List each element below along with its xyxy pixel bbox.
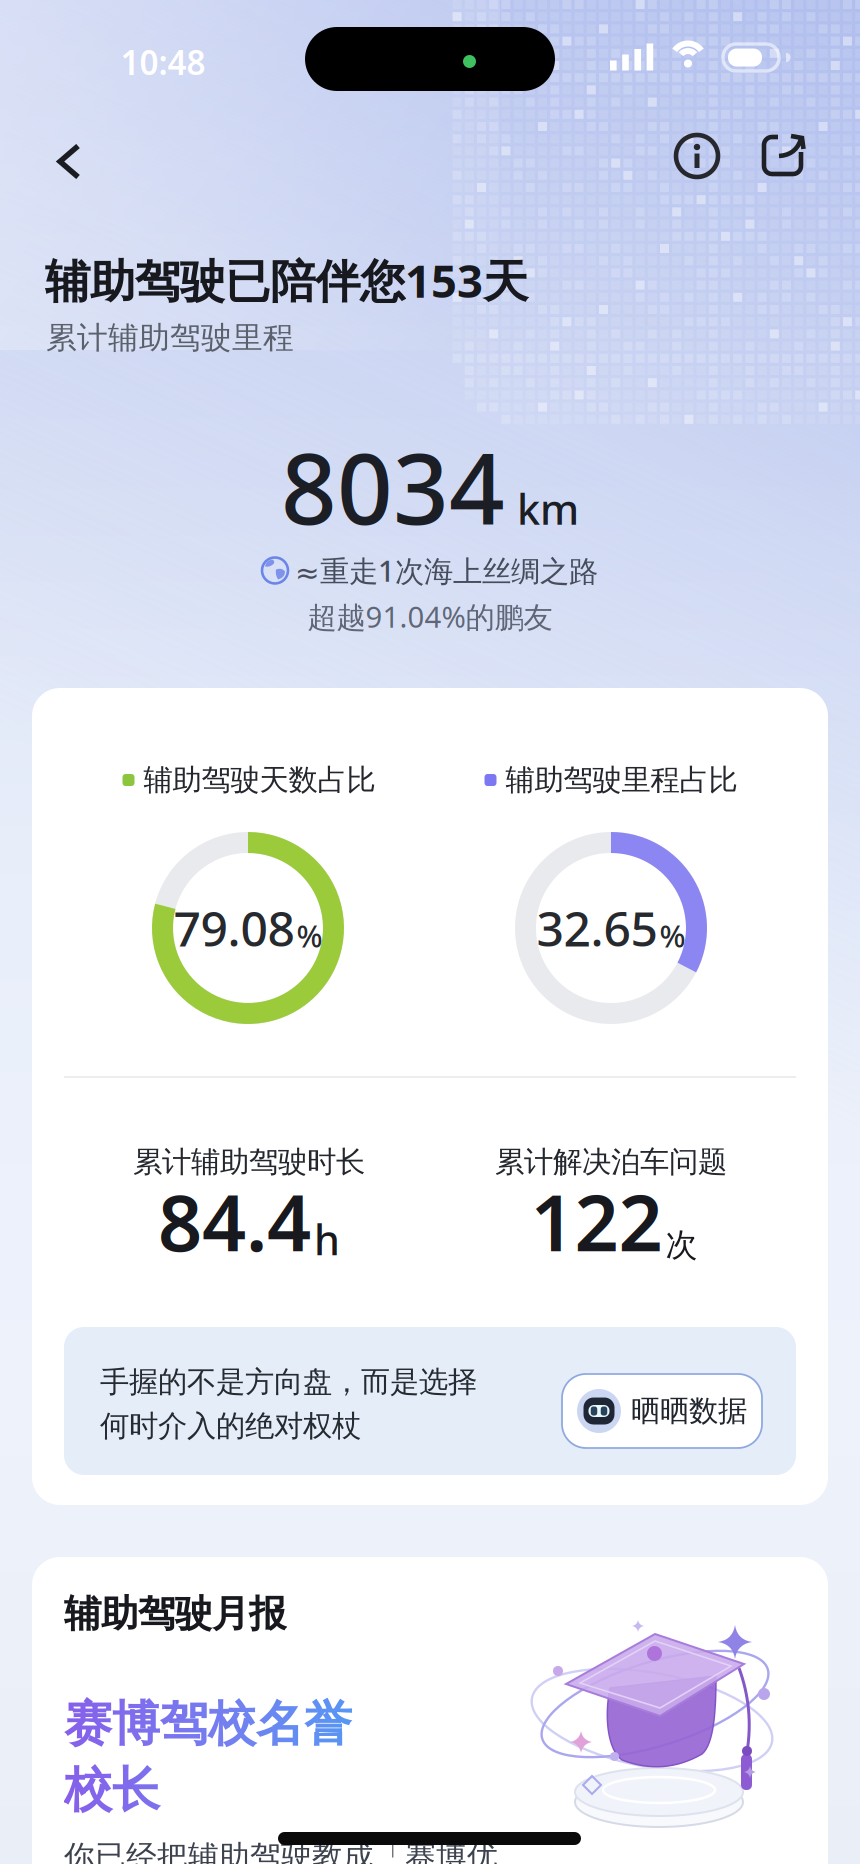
button[interactable]: Share: [760, 130, 808, 178]
staticText: ≈重走1次海上丝绸之路: [295, 551, 598, 590]
staticText: 次: [665, 1225, 697, 1265]
staticText: 辅助驾驶天数占比: [143, 762, 375, 798]
staticText: 累计辅助驾驶里程: [46, 319, 294, 357]
staticText: 累计解决泊车问题: [495, 1144, 727, 1180]
button[interactable]: Info: [676, 135, 718, 177]
staticText: 32.65: [536, 896, 657, 960]
staticText: 辅助驾驶月报: [64, 1591, 286, 1637]
staticText: 你已经把辅助驾驶教成「赛博优: [64, 1838, 498, 1864]
staticText: 手握的不是方向盘，而是选择: [100, 1364, 477, 1400]
staticText: 10:48: [120, 40, 205, 84]
staticText: 辅助驾驶里程占比: [505, 762, 737, 798]
staticText: 79.08: [173, 896, 294, 960]
staticText: %: [296, 915, 322, 956]
staticText: %: [659, 915, 685, 956]
staticText: 8034: [281, 422, 505, 551]
staticText: 84.4: [158, 1170, 311, 1273]
staticText: 何时介入的绝对权杖: [100, 1408, 361, 1444]
staticText: 累计辅助驾驶时长: [133, 1144, 365, 1180]
button[interactable]: Back: [49, 139, 93, 183]
staticText: km: [517, 481, 579, 536]
staticText: 超越91.04%的鹏友: [307, 597, 552, 636]
staticText: 122: [530, 1170, 662, 1273]
staticText: 辅助驾驶已陪伴您153天: [45, 250, 528, 310]
staticText: h: [314, 1212, 340, 1267]
button[interactable]: 晒晒数据: [562, 1374, 762, 1448]
staticText: 晒晒数据: [631, 1393, 747, 1429]
